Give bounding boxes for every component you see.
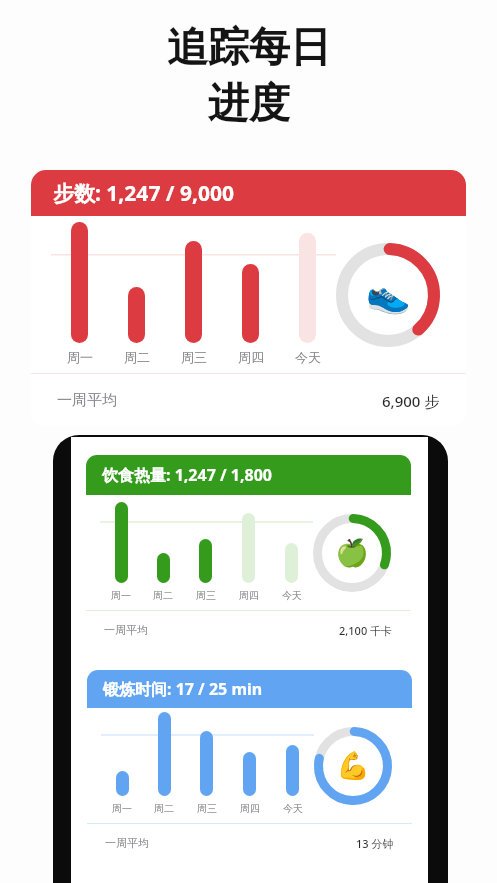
- staticText: 💪: [336, 750, 370, 782]
- staticText: 13 分钟: [356, 836, 394, 851]
- staticText: 今天: [295, 349, 321, 365]
- button[interactable]: 一周平均: [86, 611, 411, 649]
- staticText: 🍏: [335, 537, 369, 569]
- staticText: 周四: [240, 802, 260, 815]
- staticText: 👟: [366, 274, 411, 316]
- staticText: 周三: [196, 589, 216, 602]
- staticText: 一周平均: [104, 623, 148, 637]
- staticText: 周四: [239, 589, 259, 602]
- button[interactable]: 饮食热量: 1,247 / 1,800: [86, 455, 411, 649]
- staticText: 周二: [124, 349, 150, 365]
- staticText: 追踪每日: [167, 22, 331, 74]
- staticText: 6,900 步: [382, 391, 440, 411]
- button[interactable]: 锻炼时间: 17 / 25 min: [87, 670, 412, 862]
- staticText: 周一: [111, 589, 131, 602]
- staticText: 一周平均: [57, 391, 117, 410]
- staticText: 周二: [153, 589, 173, 602]
- staticText: 进度: [208, 78, 290, 130]
- staticText: 周三: [181, 349, 207, 365]
- staticText: 2,100 千卡: [339, 623, 393, 638]
- staticText: 周一: [112, 802, 132, 815]
- staticText: 一周平均: [105, 836, 149, 850]
- button[interactable]: 步数: 1,247 / 9,000: [31, 170, 466, 427]
- staticText: 周一: [67, 349, 93, 365]
- staticText: 饮食热量: 1,247 / 1,800: [102, 464, 272, 486]
- staticText: 今天: [282, 589, 302, 602]
- staticText: 锻炼时间: 17 / 25 min: [103, 678, 263, 700]
- button[interactable]: 一周平均: [31, 374, 466, 427]
- staticText: 今天: [283, 802, 303, 815]
- staticText: 周四: [238, 349, 264, 365]
- staticText: 周三: [197, 802, 217, 815]
- staticText: 周二: [154, 802, 174, 815]
- button[interactable]: 一周平均: [87, 824, 412, 862]
- staticText: 步数: 1,247 / 9,000: [53, 179, 235, 208]
